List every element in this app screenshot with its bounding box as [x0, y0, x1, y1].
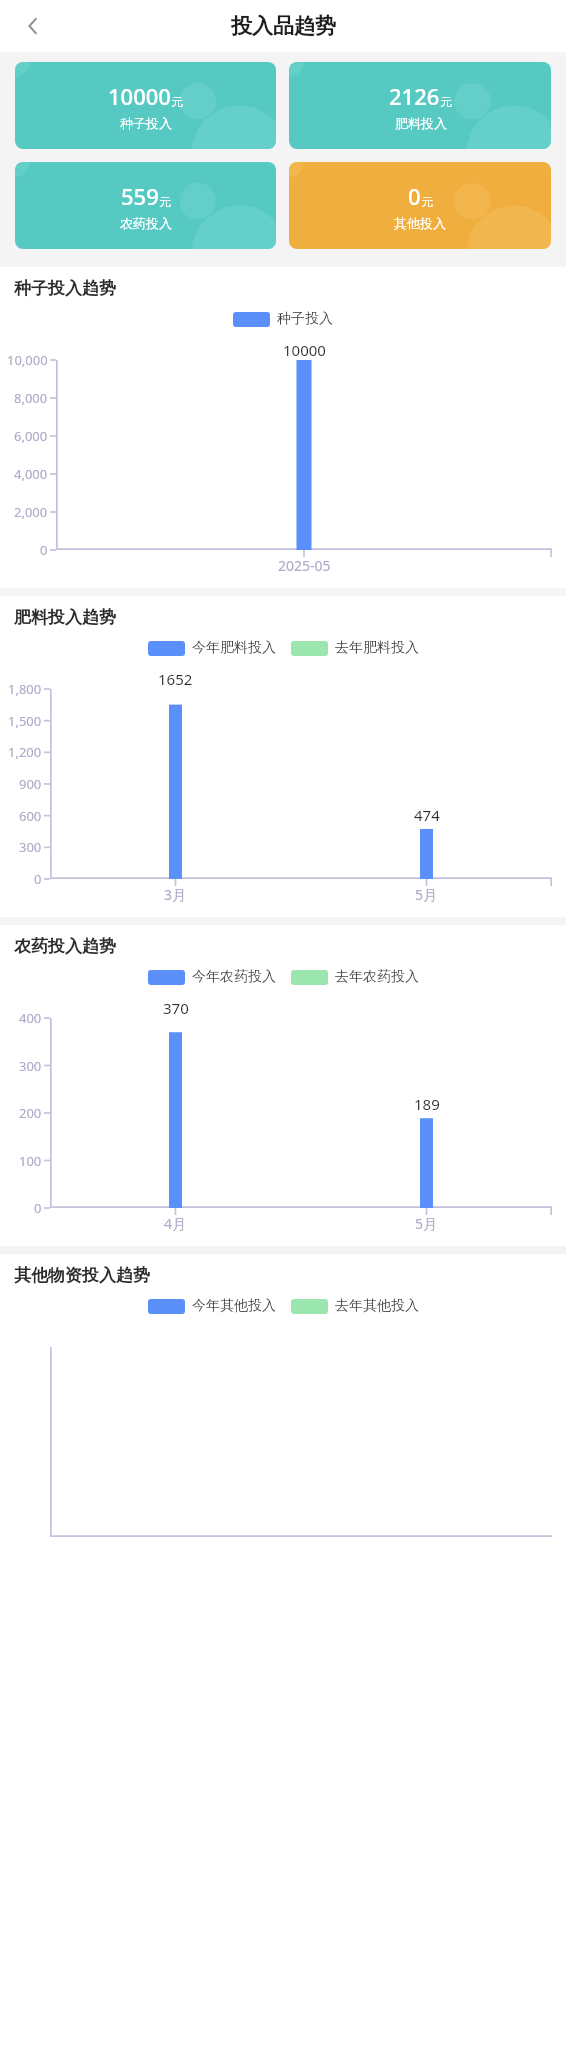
staticText: 元 [159, 194, 171, 209]
staticText: 600 [19, 807, 42, 825]
staticText: 1,800 [8, 680, 42, 698]
staticText: 900 [19, 775, 42, 793]
staticText: 100 [19, 1152, 42, 1170]
staticText: 10,000 [7, 351, 48, 369]
staticText: 今年农药投入 [192, 968, 276, 986]
staticText: 300 [19, 838, 42, 856]
staticText: 300 [19, 1057, 42, 1075]
staticText: 2025-05 [278, 556, 331, 575]
staticText: 去年肥料投入 [335, 639, 419, 657]
staticText: 200 [19, 1104, 42, 1122]
staticText: 去年其他投入 [335, 1297, 419, 1315]
staticText: 去年农药投入 [335, 968, 419, 986]
staticText: 1652 [158, 669, 193, 689]
staticText: 元 [171, 94, 183, 109]
staticText: 今年其他投入 [192, 1297, 276, 1315]
staticText: 1,500 [8, 712, 42, 730]
button[interactable]: 0 [289, 162, 551, 249]
staticText: 0 [40, 541, 48, 559]
staticText: 肥料投入 [395, 115, 447, 131]
staticText: 474 [414, 805, 440, 825]
staticText: 其他投入 [394, 215, 446, 231]
staticText: 肥料投入趋势 [14, 607, 116, 628]
staticText: 元 [421, 194, 433, 209]
staticText: 投入品趋势 [231, 13, 336, 39]
staticText: 4,000 [14, 465, 48, 483]
staticText: 4月 [164, 1214, 187, 1233]
staticText: 元 [440, 94, 452, 109]
staticText: 559 [121, 181, 159, 211]
staticText: 370 [163, 998, 189, 1018]
staticText: 5月 [415, 1214, 438, 1233]
staticText: 5月 [415, 885, 438, 904]
button[interactable]: 559 [15, 162, 276, 249]
button[interactable]: Back [12, 5, 54, 47]
staticText: 种子投入 [120, 115, 172, 131]
staticText: 种子投入 [277, 310, 333, 328]
staticText: 6,000 [14, 427, 48, 445]
staticText: 0 [34, 870, 42, 888]
staticText: 400 [19, 1009, 42, 1027]
staticText: 10000 [108, 81, 171, 111]
staticText: 8,000 [14, 389, 48, 407]
staticText: 189 [414, 1094, 440, 1114]
staticText: 种子投入趋势 [14, 278, 116, 299]
staticText: 农药投入 [120, 215, 172, 231]
staticText: 今年肥料投入 [192, 639, 276, 657]
button[interactable]: 2126 [289, 62, 551, 149]
staticText: 0 [34, 1199, 42, 1217]
staticText: 3月 [164, 885, 187, 904]
staticText: 2,000 [14, 503, 48, 521]
button[interactable]: 10000 [15, 62, 276, 149]
staticText: 农药投入趋势 [14, 936, 116, 957]
staticText: 1,200 [8, 743, 42, 761]
staticText: 10000 [283, 340, 326, 360]
staticText: 2126 [389, 81, 440, 111]
staticText: 其他物资投入趋势 [14, 1265, 150, 1286]
staticText: 0 [408, 181, 421, 211]
